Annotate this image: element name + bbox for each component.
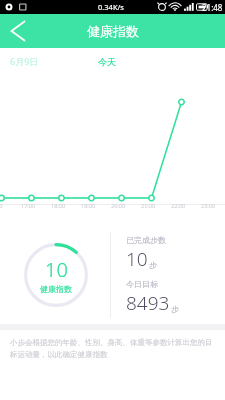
button[interactable]: 今日目标 xyxy=(126,279,179,316)
button[interactable]: Back xyxy=(0,14,34,48)
staticText: 健康指数 xyxy=(40,284,72,294)
staticText: 22:00 xyxy=(171,202,186,209)
button[interactable]: 10 xyxy=(23,242,89,308)
staticText: 今日目标 xyxy=(126,279,158,289)
staticText: 步 xyxy=(149,260,157,270)
staticText: 10 xyxy=(45,256,68,283)
staticText: 21:00 xyxy=(141,202,156,209)
staticText: 6月9日 xyxy=(10,55,39,67)
staticText: 今天 xyxy=(98,56,116,67)
staticText: 步 xyxy=(171,304,179,314)
staticText: 21:48 xyxy=(202,2,223,13)
staticText: 8493 xyxy=(126,290,170,316)
staticText: 已完成步数 xyxy=(126,235,166,245)
staticText: 小步会根据您的年龄、性别、身高、体重等参数计算出您的目标运动量，以此确定健康指数 xyxy=(10,338,215,359)
staticText: 20:00 xyxy=(111,202,126,209)
staticText: 00 xyxy=(0,202,3,209)
staticText: 0.34K/s xyxy=(98,2,124,12)
staticText: 18:00 xyxy=(51,202,66,209)
staticText: 17:00 xyxy=(21,202,36,209)
button[interactable]: 6月9日 xyxy=(10,55,39,67)
staticText: 10 xyxy=(126,246,148,272)
staticText: 健康指数 xyxy=(87,23,139,39)
button[interactable]: 已完成步数 xyxy=(126,235,166,272)
staticText: 19:00 xyxy=(81,202,96,209)
button[interactable]: 今天 xyxy=(98,56,116,67)
staticText: 23:00 xyxy=(201,202,216,209)
